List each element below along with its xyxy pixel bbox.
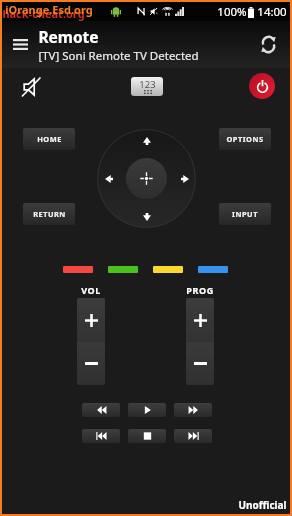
staticText: [TV] Soni Remote TV Detected [38,48,199,64]
staticText: INPUT [232,209,258,219]
button[interactable]: DOWN [138,208,155,225]
button[interactable]: Next [174,429,212,443]
button[interactable]: Play [128,403,166,417]
button[interactable]: UP [138,132,155,149]
button[interactable]: Stop [128,429,166,443]
staticText: hack-cheat.org [2,6,85,21]
button[interactable]: RETURN [23,203,75,225]
staticText: Remote [38,26,99,47]
button[interactable]: Colour key [63,266,93,273]
button[interactable]: RIGHT [176,170,193,187]
button[interactable]: Colour key [198,266,228,273]
button[interactable]: LEFT [100,170,117,187]
button[interactable]: Refresh [246,21,290,68]
button[interactable]: Number pad [131,77,163,96]
button[interactable]: Previous [82,429,120,443]
staticText: HOME [37,134,62,144]
button[interactable]: OPTIONS [219,128,271,150]
button[interactable]: OK [126,158,167,199]
button[interactable]: PROG up [186,298,214,342]
staticText: iOrange.Esd.org [5,2,93,17]
button[interactable]: Power [249,73,275,99]
button[interactable]: Rewind [82,403,120,417]
staticText: OPTIONS [226,134,264,144]
button[interactable]: VOL up [77,298,105,342]
button[interactable]: INPUT [219,203,271,225]
button[interactable]: VOL down [77,342,105,385]
button[interactable]: PROG down [186,342,214,385]
staticText: 123 [139,78,156,91]
staticText: Unofficial [238,498,287,512]
button[interactable]: Colour key [108,266,138,273]
staticText: 100% [217,4,247,20]
staticText: VOL [81,284,101,296]
staticText: RETURN [33,209,66,219]
button[interactable]: Fast forward [174,403,212,417]
button[interactable]: Mute [19,75,43,99]
button[interactable]: HOME [23,128,75,150]
button[interactable]: Colour key [153,266,183,273]
staticText: PROG [186,284,214,296]
staticText: 14:00 [257,4,287,20]
button[interactable]: Menu [2,21,38,68]
